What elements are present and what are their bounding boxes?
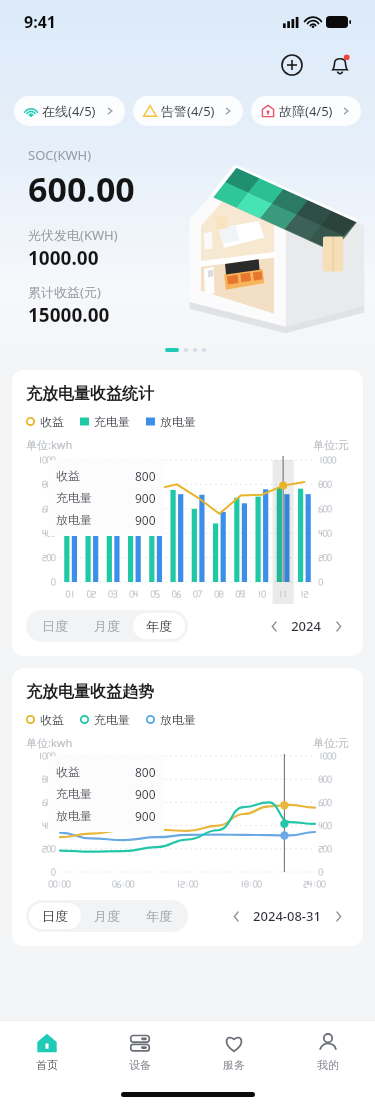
staticText: 月度 <box>94 908 120 924</box>
staticText: 2024-08-31 <box>253 907 321 925</box>
button[interactable]: 首页 <box>0 1021 93 1083</box>
staticText: 告警(4/5) <box>161 102 215 120</box>
staticText: 单位:kwh <box>26 437 73 452</box>
button[interactable]: 我的 <box>281 1021 375 1083</box>
button[interactable]: 在线(4/5) <box>14 96 125 126</box>
staticText: 首页 <box>36 1058 58 1072</box>
button[interactable]: 故障(4/5) <box>251 96 361 126</box>
staticText: 900 <box>135 490 156 506</box>
button[interactable]: 月度 <box>81 613 133 639</box>
button[interactable]: 月度 <box>81 903 133 929</box>
staticText: 在线(4/5) <box>42 102 96 120</box>
staticText: 900 <box>135 512 156 528</box>
button[interactable]: Next <box>327 905 349 927</box>
staticText: 充电量 <box>94 712 130 727</box>
button[interactable]: 年度 <box>133 613 185 639</box>
staticText: 1000.00 <box>28 245 99 271</box>
staticText: 放电量 <box>56 808 92 823</box>
staticText: 15000.00 <box>28 302 110 328</box>
staticText: 9:41 <box>24 11 56 33</box>
staticText: 充电量 <box>94 414 130 429</box>
staticText: 收益 <box>40 414 64 429</box>
button[interactable]: 日度 <box>29 613 81 639</box>
staticText: 900 <box>135 786 156 802</box>
staticText: 年度 <box>146 618 172 634</box>
staticText: 单位:kwh <box>26 735 73 750</box>
staticText: 年度 <box>146 908 172 924</box>
staticText: 收益 <box>56 764 80 779</box>
staticText: 2024 <box>291 617 321 635</box>
button[interactable]: 服务 <box>187 1021 281 1083</box>
staticText: 收益 <box>40 712 64 727</box>
button[interactable]: 设备 <box>93 1021 187 1083</box>
staticText: 日度 <box>42 618 68 634</box>
button[interactable]: Next <box>327 615 349 637</box>
staticText: 600.00 <box>28 166 135 212</box>
staticText: 放电量 <box>56 512 92 527</box>
staticText: 放电量 <box>160 414 196 429</box>
staticText: 设备 <box>129 1058 151 1072</box>
staticText: 充电量 <box>56 786 92 801</box>
button[interactable]: Previous <box>225 905 247 927</box>
staticText: 800 <box>135 468 156 484</box>
staticText: SOC(KWH) <box>28 146 92 164</box>
button[interactable]: 告警(4/5) <box>133 96 243 126</box>
staticText: 累计收益(元) <box>28 283 101 301</box>
staticText: 日度 <box>42 908 68 924</box>
staticText: 单位:元 <box>313 735 349 750</box>
staticText: 充电量 <box>56 490 92 505</box>
staticText: 我的 <box>317 1058 339 1072</box>
staticText: 服务 <box>223 1058 245 1072</box>
button[interactable]: 日度 <box>29 903 81 929</box>
button[interactable]: 年度 <box>133 903 185 929</box>
staticText: 900 <box>135 808 156 824</box>
staticText: 收益 <box>56 468 80 483</box>
staticText: 光伏发电(KWH) <box>28 226 118 244</box>
button[interactable]: Previous <box>263 615 285 637</box>
staticText: 充放电量收益趋势 <box>26 682 154 702</box>
button[interactable]: Add <box>275 48 309 82</box>
staticText: 月度 <box>94 618 120 634</box>
staticText: 800 <box>135 764 156 780</box>
button[interactable]: Notifications <box>323 48 357 82</box>
staticText: 故障(4/5) <box>279 102 333 120</box>
staticText: 单位:元 <box>313 437 349 452</box>
staticText: 充放电量收益统计 <box>26 384 154 404</box>
staticText: 放电量 <box>160 712 196 727</box>
